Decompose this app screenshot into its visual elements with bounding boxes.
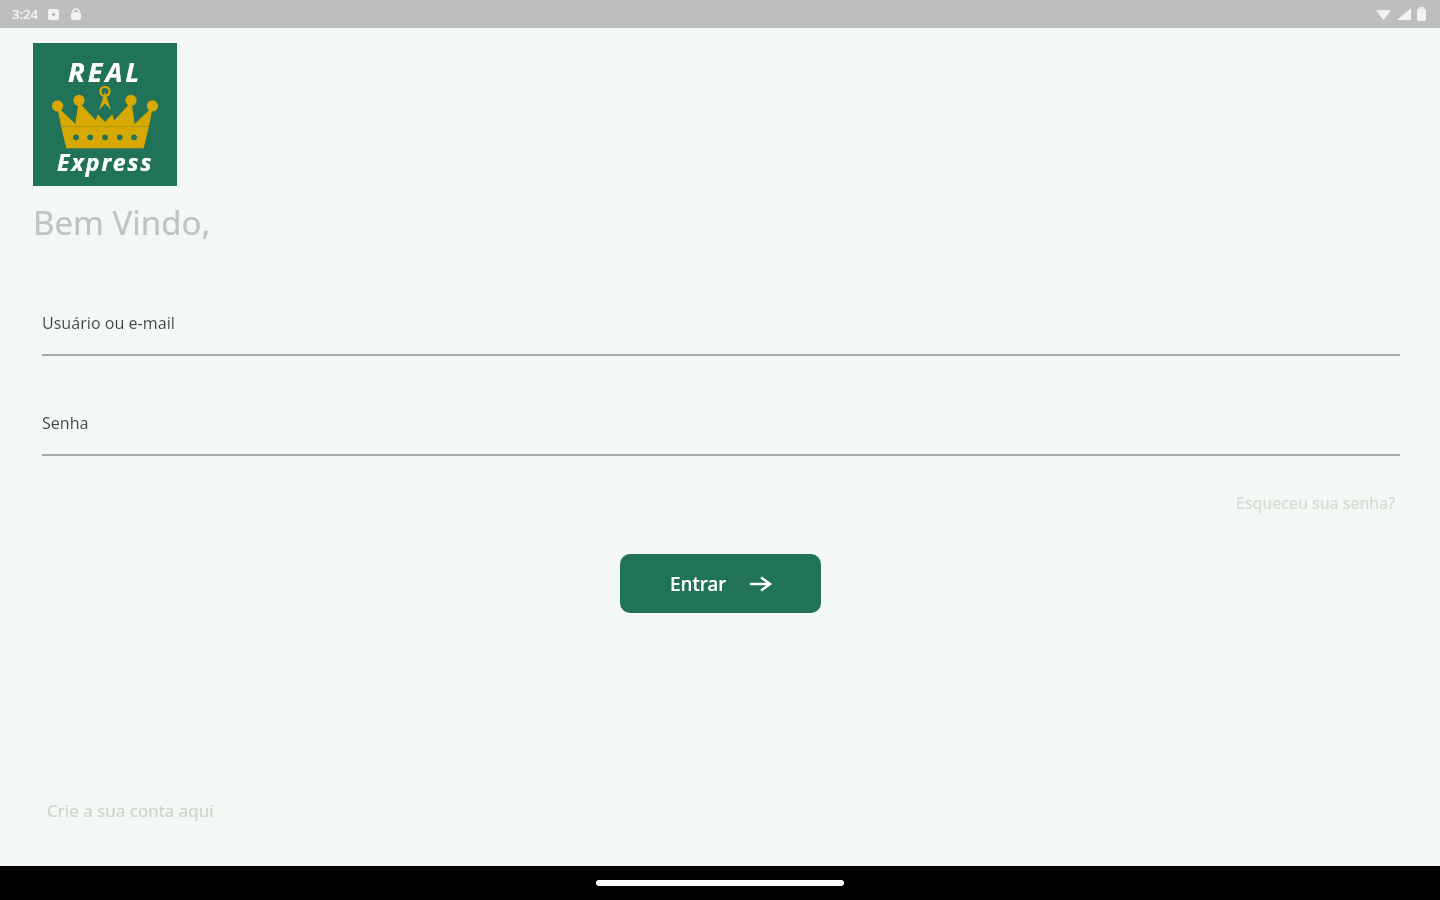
staticText: Senha — [42, 412, 89, 434]
button[interactable]: Senha — [42, 412, 1400, 456]
button[interactable]: Esqueceu sua senha? — [1232, 488, 1400, 518]
staticText: Bem Vindo, — [33, 200, 211, 245]
other: Home — [596, 880, 844, 886]
staticText: Esqueceu sua senha? — [1236, 492, 1396, 514]
staticText: Entrar — [670, 571, 727, 597]
button[interactable]: Real Express logo — [33, 43, 177, 186]
staticText: Crie a sua conta aqui — [47, 799, 214, 822]
staticText: Express — [57, 146, 154, 177]
button[interactable]: Crie a sua conta aqui — [43, 795, 218, 826]
staticText: REAL — [68, 53, 143, 90]
staticText: 3:24 — [12, 5, 38, 23]
button[interactable]: Usuário ou e-mail — [42, 312, 1400, 356]
staticText: Usuário ou e-mail — [42, 312, 175, 334]
button[interactable]: Entrar — [620, 554, 821, 613]
